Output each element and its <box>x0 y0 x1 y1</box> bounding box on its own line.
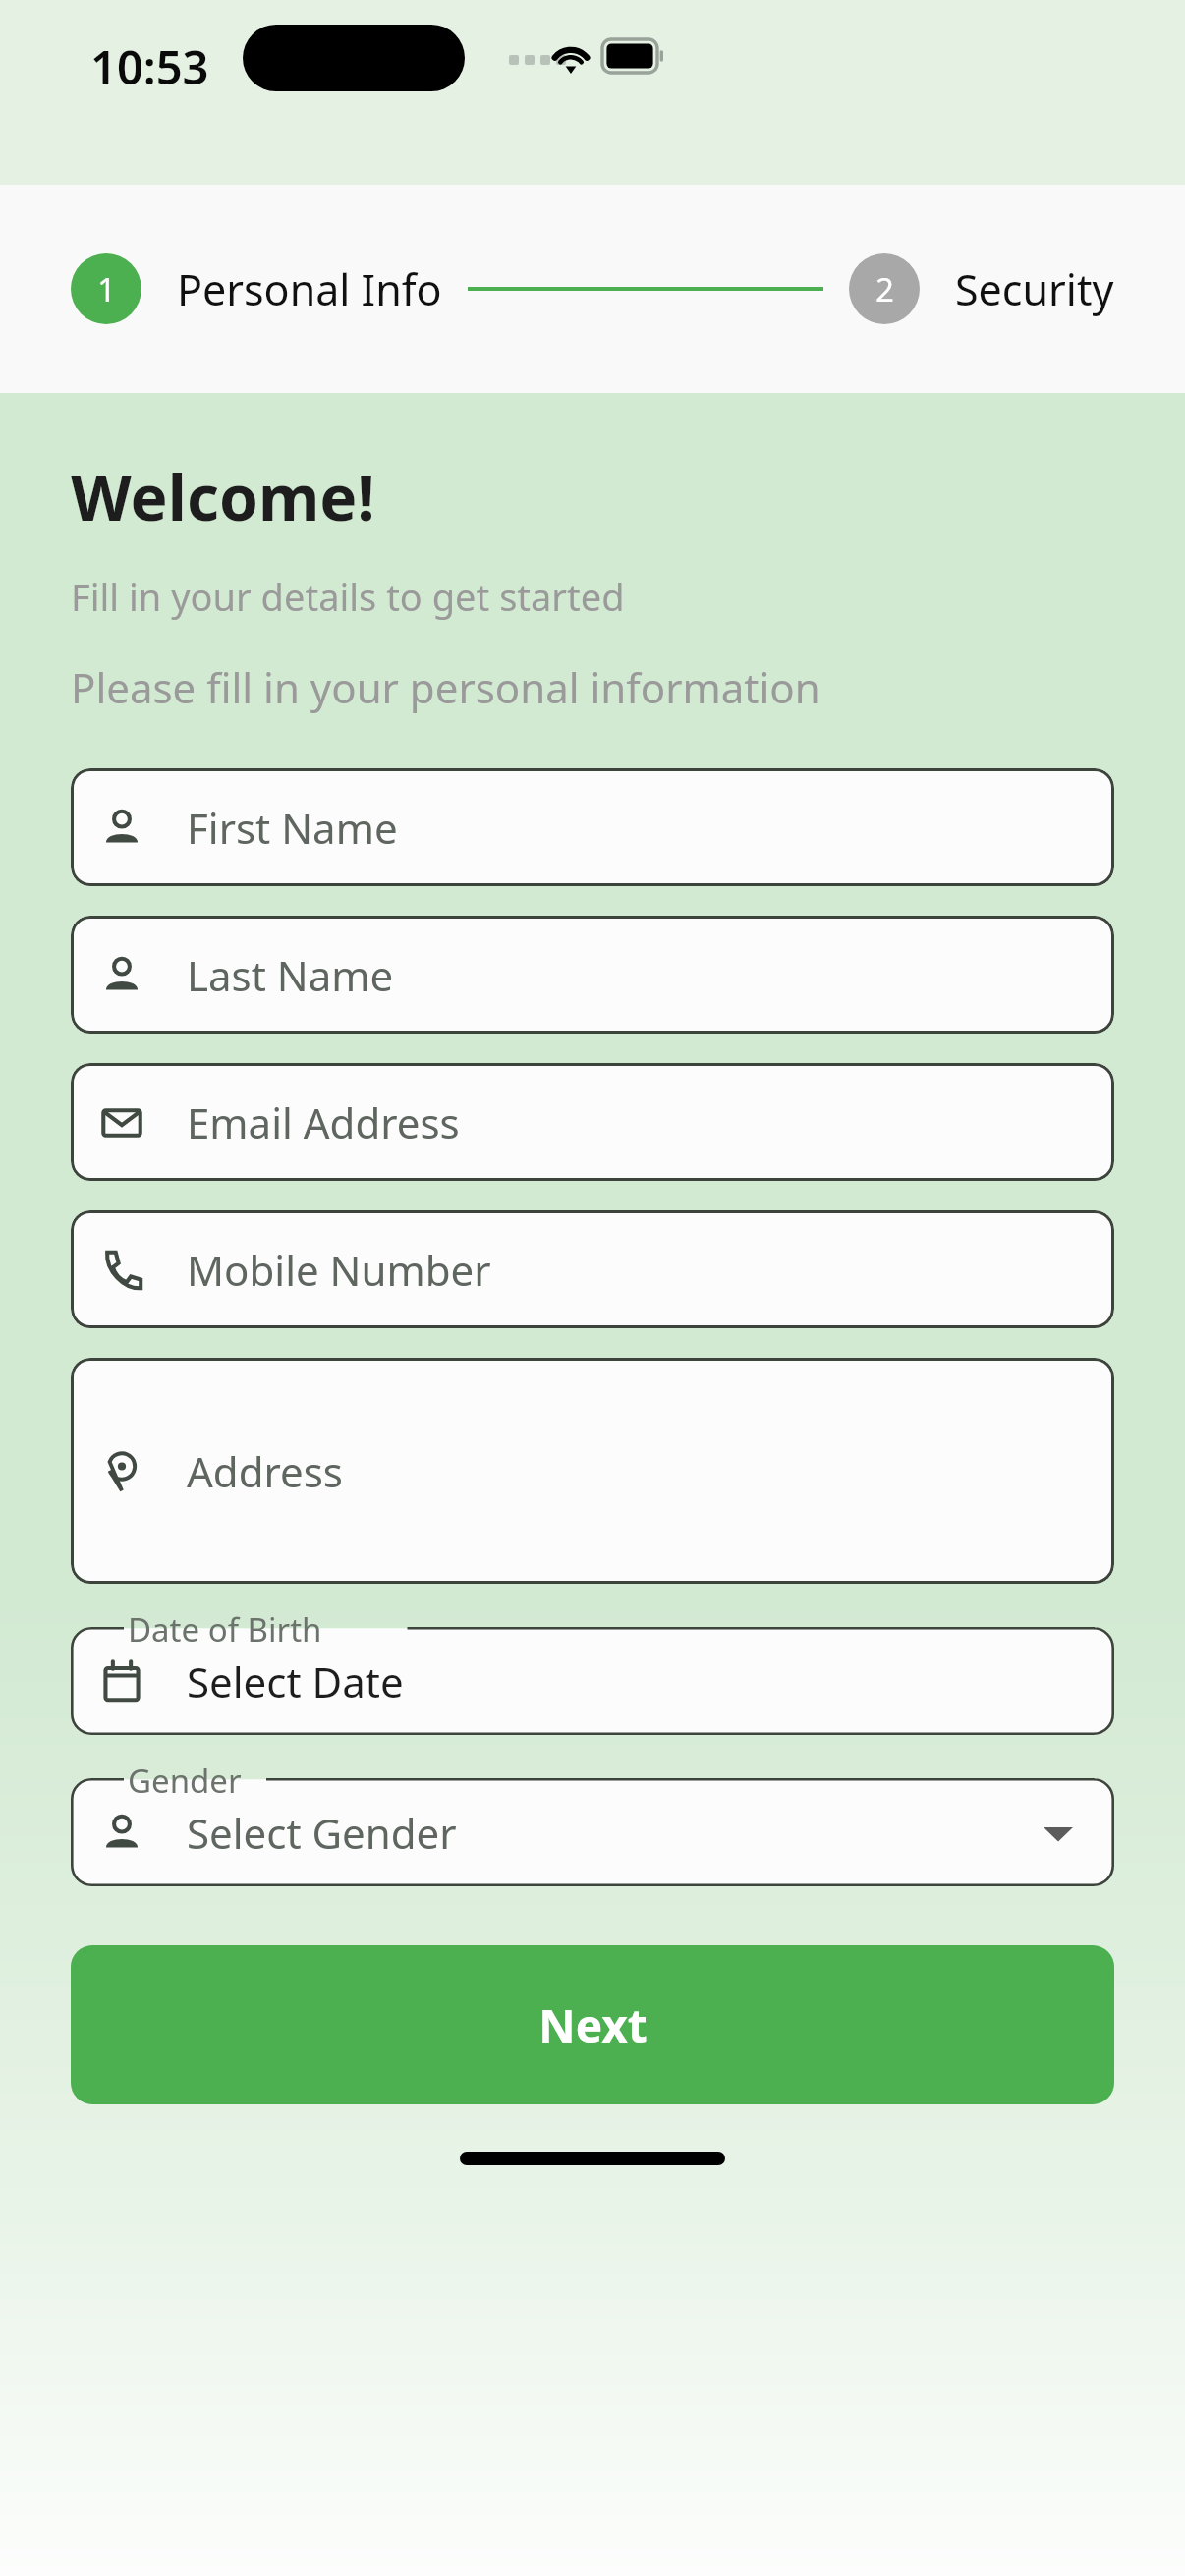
button[interactable]: 1 <box>71 253 141 324</box>
staticText: Address <box>187 1443 343 1499</box>
button[interactable]: Address <box>71 1358 1114 1584</box>
staticText: Date of Birth <box>128 1607 322 1652</box>
staticText: First Name <box>187 800 398 856</box>
staticText: Next <box>538 1994 648 2056</box>
button[interactable]: Mobile Number <box>71 1210 1114 1328</box>
button[interactable]: Security <box>955 260 1114 318</box>
staticText: Welcome! <box>71 454 375 539</box>
button[interactable]: Next <box>71 1945 1114 2104</box>
staticText: 10:53 <box>90 35 209 98</box>
staticText: Mobile Number <box>187 1242 491 1298</box>
staticText: Email Address <box>187 1094 460 1150</box>
staticText: 1 <box>97 267 116 311</box>
staticText: Select Gender <box>187 1805 457 1861</box>
staticText: Select Date <box>187 1653 404 1709</box>
staticText: Last Name <box>187 947 394 1003</box>
button[interactable]: Last Name <box>71 916 1114 1034</box>
button[interactable]: Select Date <box>71 1627 1114 1735</box>
staticText: Fill in your details to get started <box>71 571 625 622</box>
button[interactable]: Personal Info <box>177 260 442 318</box>
button[interactable]: First Name <box>71 768 1114 886</box>
button[interactable]: Email Address <box>71 1063 1114 1181</box>
staticText: 2 <box>875 267 894 311</box>
staticText: Please fill in your personal information <box>71 659 820 715</box>
button[interactable]: Select Gender <box>71 1778 1114 1886</box>
staticText: Gender <box>128 1759 242 1803</box>
other: Open gender dropdown <box>1044 1819 1073 1848</box>
button[interactable]: 2 <box>849 253 920 324</box>
